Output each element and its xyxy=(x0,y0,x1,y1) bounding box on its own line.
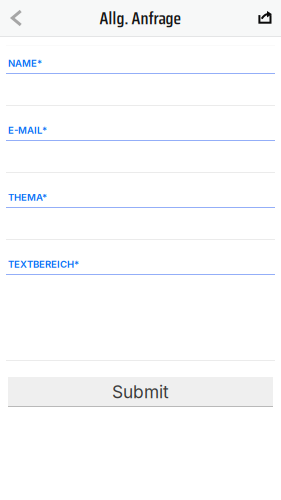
staticText: Allg. Anfrage xyxy=(99,4,181,32)
button[interactable]: Submit xyxy=(8,377,273,407)
staticText: Submit xyxy=(112,381,169,402)
staticText: NAME* xyxy=(8,57,42,69)
staticText: THEMA* xyxy=(8,191,47,203)
button[interactable]: Share xyxy=(245,0,281,36)
button[interactable]: Back xyxy=(0,0,33,36)
staticText: TEXTBEREICH* xyxy=(8,258,79,270)
staticText: E-MAIL* xyxy=(8,124,47,136)
